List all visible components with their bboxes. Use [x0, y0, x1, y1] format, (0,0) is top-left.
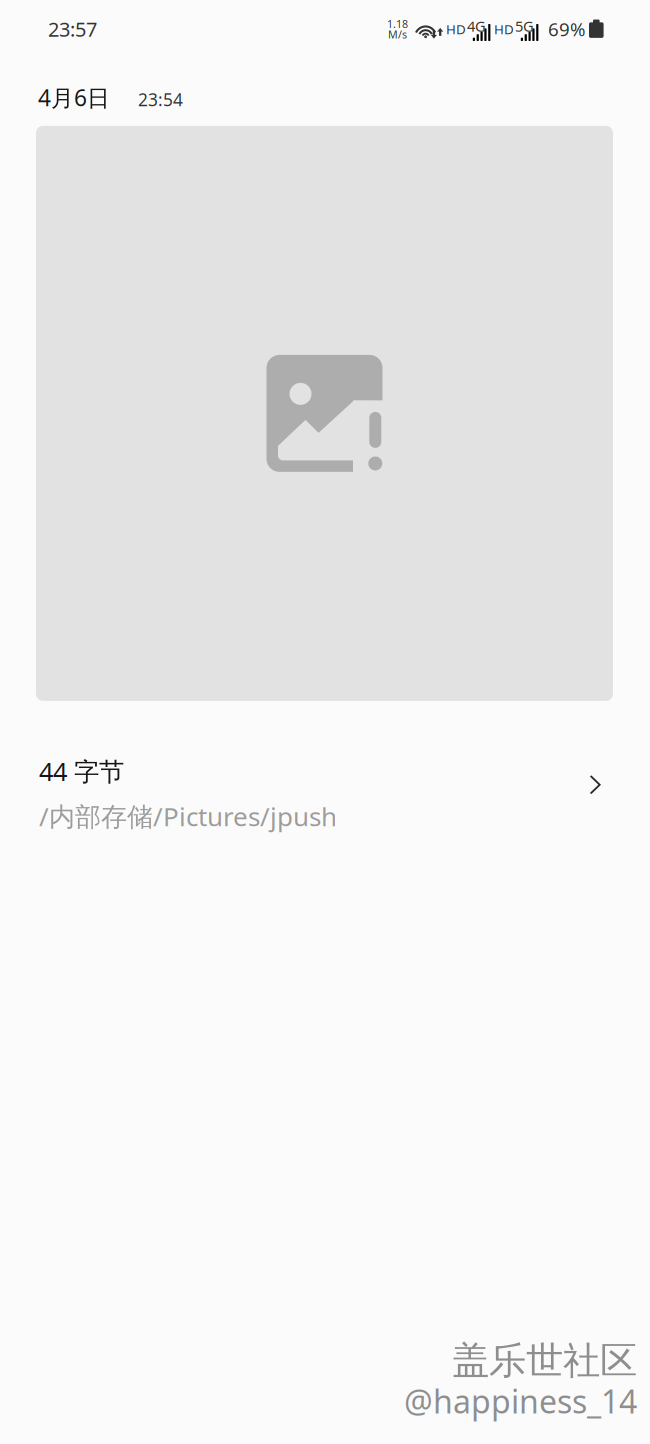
staticText: HD: [446, 20, 466, 38]
staticText: 23:54: [138, 88, 183, 111]
staticText: 23:57: [48, 15, 97, 43]
staticText: 44 字节: [39, 754, 124, 788]
staticText: /内部存储/Pictures/jpush: [39, 798, 337, 834]
button[interactable]: 44 字节: [0, 701, 650, 844]
staticText: 4月6日: [38, 82, 110, 113]
staticText: M/s: [388, 27, 407, 41]
staticText: 5G: [515, 16, 534, 36]
staticText: @happiness_14: [404, 1379, 637, 1423]
staticText: 4G: [467, 16, 486, 36]
staticText: HD: [494, 20, 514, 38]
staticText: 盖乐世社区: [452, 1337, 637, 1384]
staticText: 1.18: [387, 16, 408, 31]
staticText: 69%: [548, 16, 586, 42]
